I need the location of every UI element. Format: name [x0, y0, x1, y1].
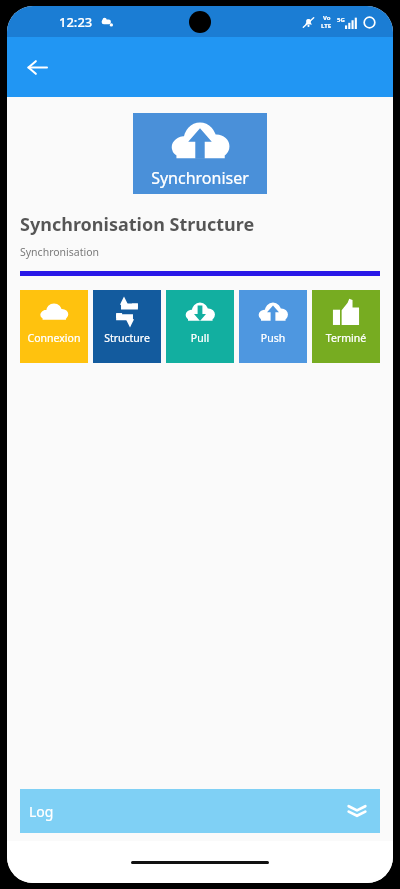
- staticText: Pull: [166, 331, 234, 345]
- button[interactable]: Terminé: [312, 290, 380, 363]
- button[interactable]: Pull: [166, 290, 234, 363]
- staticText: Structure: [93, 331, 161, 345]
- button[interactable]: Synchroniser: [133, 113, 267, 194]
- staticText: Synchronisation Structure: [20, 212, 255, 237]
- button[interactable]: Connexion: [20, 290, 88, 363]
- staticText: Synchroniser: [133, 167, 267, 189]
- other: Expand log: [344, 798, 370, 824]
- staticText: Push: [239, 331, 307, 345]
- staticText: Terminé: [312, 331, 380, 345]
- staticText: LTE: [321, 22, 332, 30]
- staticText: Vo: [323, 14, 331, 22]
- button[interactable]: Back: [16, 46, 58, 88]
- staticText: Connexion: [20, 331, 88, 345]
- button[interactable]: Log: [20, 789, 380, 833]
- button[interactable]: Push: [239, 290, 307, 363]
- staticText: 12:23: [59, 13, 93, 31]
- staticText: Synchronisation: [20, 245, 100, 259]
- staticText: Log: [29, 802, 54, 821]
- staticText: 5G: [337, 16, 345, 24]
- button[interactable]: Structure: [93, 290, 161, 363]
